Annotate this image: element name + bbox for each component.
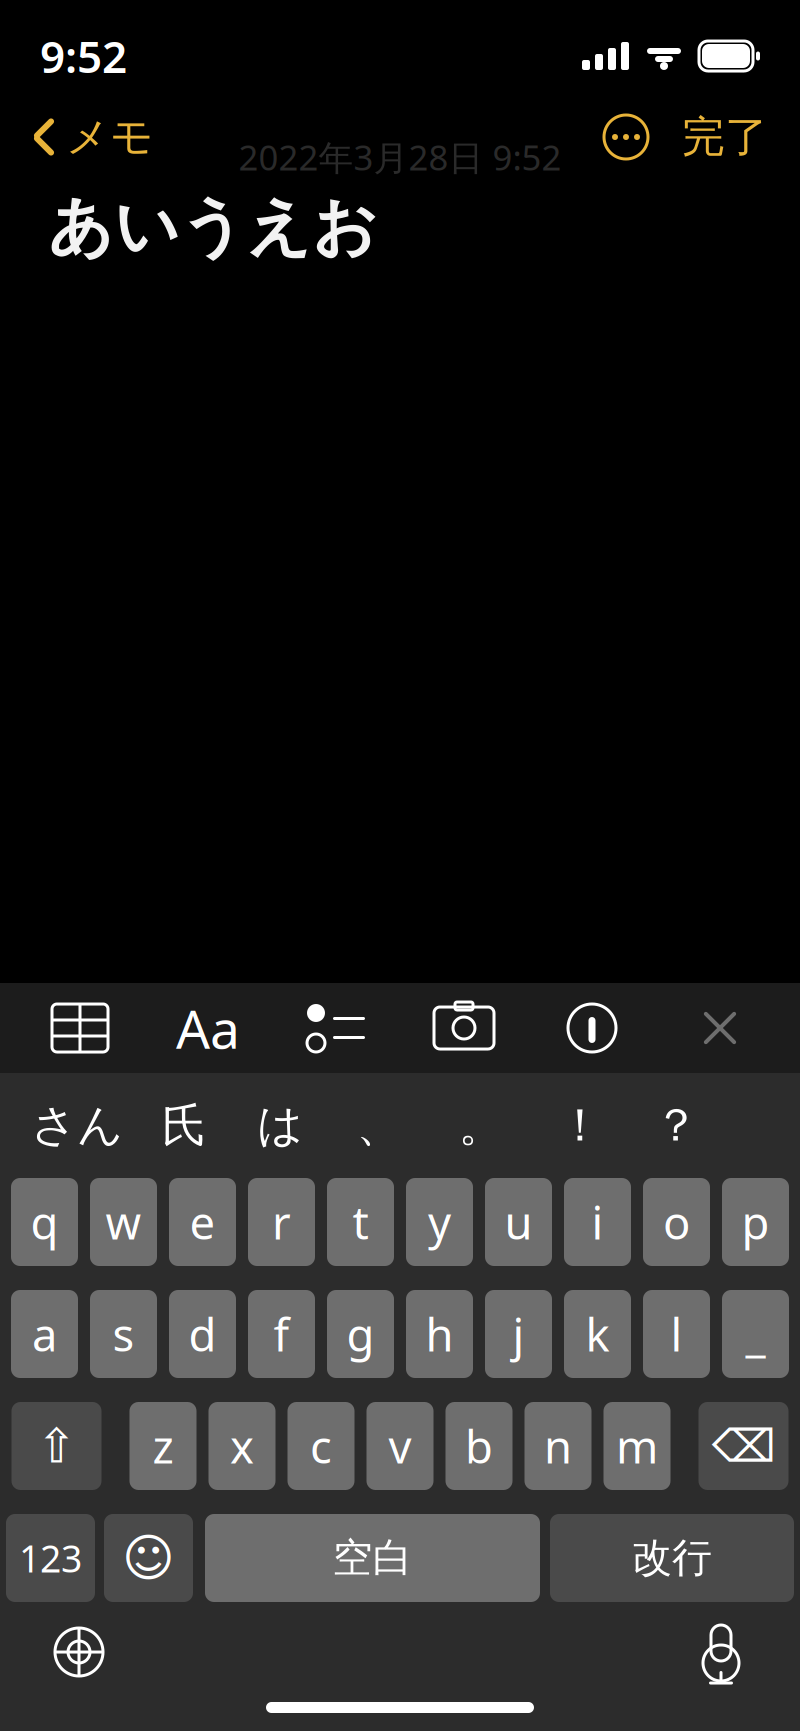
button[interactable]: h [406, 1290, 473, 1378]
staticText: ⇧ [36, 1419, 76, 1473]
staticText: i [591, 1192, 603, 1252]
button[interactable]: k [564, 1290, 631, 1378]
staticText: c [310, 1416, 332, 1476]
staticText: l [670, 1304, 682, 1364]
staticText: z [152, 1416, 173, 1476]
staticText: 9:52 [40, 27, 127, 85]
button[interactable]: i [564, 1178, 631, 1266]
button[interactable]: e [169, 1178, 236, 1266]
button[interactable]: 空白 [205, 1514, 540, 1602]
button[interactable]: は [232, 1073, 328, 1178]
button[interactable]: c [287, 1402, 354, 1490]
button[interactable]: 書式 [160, 983, 256, 1073]
button[interactable]: g [327, 1290, 394, 1378]
button[interactable]: m [603, 1402, 670, 1490]
button[interactable]: y [406, 1178, 473, 1266]
staticText: s [112, 1304, 134, 1364]
button[interactable]: s [90, 1290, 157, 1378]
button[interactable]: x [208, 1402, 275, 1490]
staticText: k [585, 1304, 609, 1364]
button[interactable]: 数字 [6, 1514, 95, 1602]
button[interactable]: 表 [32, 983, 128, 1073]
button[interactable]: シフト [11, 1402, 101, 1490]
staticText: x [230, 1416, 254, 1476]
button[interactable]: p [722, 1178, 789, 1266]
staticText: y [428, 1192, 451, 1252]
staticText: t [352, 1192, 368, 1252]
button[interactable]: d [169, 1290, 236, 1378]
staticText: 2022年3月28日 9:52 [238, 134, 561, 180]
button[interactable]: メモ [12, 103, 174, 171]
button[interactable]: b [445, 1402, 512, 1490]
button[interactable]: z [129, 1402, 196, 1490]
button[interactable]: j [485, 1290, 552, 1378]
staticText: u [504, 1192, 532, 1252]
staticText: 改行 [632, 1533, 712, 1582]
staticText: ⌫ [711, 1420, 775, 1472]
staticText: は [257, 1098, 303, 1153]
button[interactable]: マークアップ [544, 983, 640, 1073]
staticText: さん [31, 1098, 123, 1153]
button[interactable]: 完了 [662, 103, 788, 171]
staticText: r [272, 1192, 291, 1252]
button[interactable]: 氏 [136, 1073, 232, 1178]
staticText: n [544, 1416, 572, 1476]
button[interactable]: w [90, 1178, 157, 1266]
button[interactable]: 閉じる [672, 983, 768, 1073]
staticText: 氏 [161, 1098, 206, 1153]
staticText: ？ [653, 1098, 698, 1153]
staticText: m [616, 1416, 658, 1476]
button[interactable]: その他 [590, 105, 662, 169]
button[interactable]: カメラ [416, 983, 512, 1073]
staticText: 123 [19, 1533, 82, 1583]
button[interactable]: ？ [628, 1073, 724, 1178]
staticText: e [189, 1192, 215, 1252]
button[interactable]: 絵文字 [104, 1514, 193, 1602]
button[interactable]: t [327, 1178, 394, 1266]
button[interactable]: 。 [430, 1073, 532, 1178]
staticText: h [425, 1304, 453, 1364]
staticText: w [105, 1192, 141, 1252]
staticText: あいうえお [48, 188, 378, 267]
button[interactable]: r [248, 1178, 315, 1266]
staticText: j [512, 1304, 524, 1364]
button[interactable]: _ [722, 1290, 789, 1378]
staticText: _ [745, 1304, 765, 1364]
staticText: 、 [356, 1098, 401, 1153]
staticText: 空白 [332, 1533, 412, 1582]
staticText: p [741, 1192, 769, 1252]
staticText: a [32, 1304, 57, 1364]
staticText: f [273, 1304, 289, 1364]
staticText: g [346, 1304, 374, 1364]
staticText: q [30, 1192, 58, 1252]
button[interactable]: q [11, 1178, 78, 1266]
button[interactable]: o [643, 1178, 710, 1266]
button[interactable]: チェックリスト [288, 983, 384, 1073]
staticText: ☺ [122, 1529, 175, 1587]
staticText: Aa [176, 993, 240, 1063]
staticText: o [663, 1192, 690, 1252]
button[interactable]: f [248, 1290, 315, 1378]
button[interactable]: a [11, 1290, 78, 1378]
staticText: v [388, 1416, 411, 1476]
staticText: b [465, 1416, 493, 1476]
staticText: ！ [557, 1098, 602, 1153]
button[interactable]: u [485, 1178, 552, 1266]
button[interactable]: n [524, 1402, 591, 1490]
button[interactable]: l [643, 1290, 710, 1378]
button[interactable]: 音声入力 [676, 1612, 766, 1692]
button[interactable]: ！ [532, 1073, 628, 1178]
button[interactable]: 、 [328, 1073, 430, 1178]
button[interactable]: v [366, 1402, 433, 1490]
button[interactable]: 削除 [698, 1402, 788, 1490]
staticText: d [188, 1304, 216, 1364]
button[interactable]: 改行 [550, 1514, 794, 1602]
staticText: メモ [66, 111, 154, 163]
staticText: 。 [458, 1098, 503, 1153]
staticText: 完了 [682, 111, 768, 163]
button[interactable]: さん [18, 1073, 136, 1178]
button[interactable]: 次のキーボード [34, 1612, 124, 1692]
